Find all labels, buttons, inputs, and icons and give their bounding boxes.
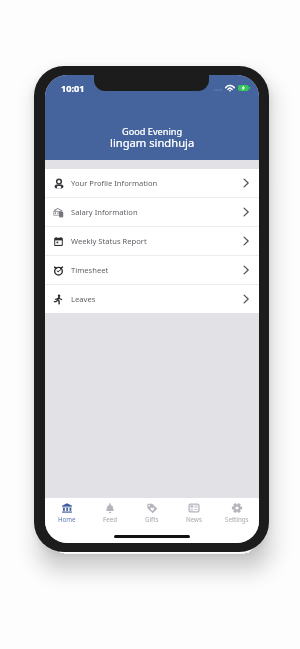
button[interactable]: Timesheet xyxy=(45,256,259,284)
button[interactable]: Salary Information xyxy=(45,198,259,226)
staticText: lingam sindhuja xyxy=(110,135,195,150)
staticText: 10:01 xyxy=(61,82,85,95)
button[interactable]: Leaves xyxy=(45,285,259,313)
button[interactable]: Your Profile Information xyxy=(45,169,259,197)
button[interactable]: Gifts xyxy=(132,502,172,523)
staticText: Settings xyxy=(225,515,249,523)
button[interactable]: Home xyxy=(47,502,87,523)
staticText: Timesheet xyxy=(71,265,109,275)
staticText: Weekly Status Report xyxy=(71,236,147,246)
staticText: Salary Information xyxy=(71,207,138,217)
staticText: Your Profile Information xyxy=(71,178,158,188)
button[interactable]: News xyxy=(174,502,214,523)
staticText: News xyxy=(186,515,202,523)
staticText: Leaves xyxy=(71,294,96,304)
button[interactable]: Feed xyxy=(90,502,130,523)
staticText: Gifts xyxy=(145,515,159,523)
button[interactable]: Settings xyxy=(217,502,257,523)
staticText: Feed xyxy=(103,515,117,523)
staticText: Home xyxy=(58,515,76,523)
staticText: Good Evening xyxy=(122,125,183,138)
button[interactable]: Weekly Status Report xyxy=(45,227,259,255)
